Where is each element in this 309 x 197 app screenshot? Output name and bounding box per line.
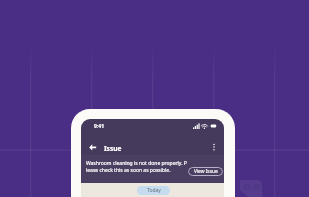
staticText: View Issue [194, 168, 218, 175]
button[interactable]: Today [137, 186, 170, 195]
button[interactable]: Back [85, 140, 99, 154]
staticText: Today [147, 187, 161, 194]
button[interactable]: More options [208, 140, 220, 152]
staticText: 9:41 [94, 123, 104, 130]
button[interactable]: View Issue [188, 167, 223, 176]
staticText: Issue [104, 144, 122, 153]
staticText: Washroom cleaning is not done properly. … [86, 160, 206, 174]
